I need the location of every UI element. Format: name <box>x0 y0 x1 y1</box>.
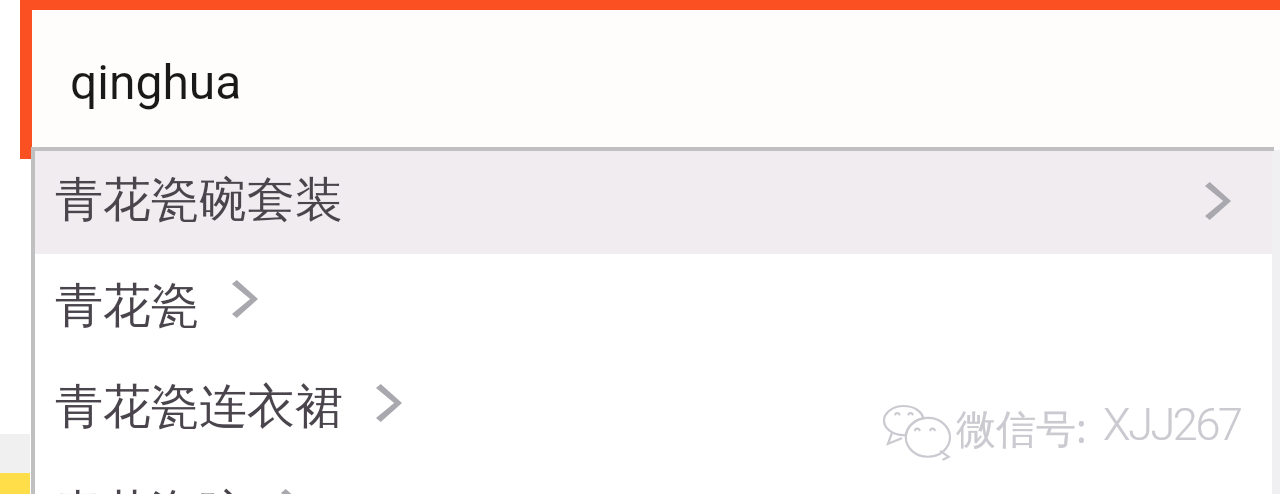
staticText: 青花瓷 <box>55 276 199 336</box>
staticText: 微信号: <box>956 400 1087 455</box>
button[interactable] <box>35 355 1272 456</box>
button[interactable] <box>35 456 1272 494</box>
staticText: 青花瓷碗 <box>55 483 247 494</box>
button[interactable] <box>35 254 1272 355</box>
staticText: 青花瓷碗套装 <box>55 170 343 230</box>
staticText: qinghua <box>70 54 242 110</box>
staticText: XJJ267 <box>1103 398 1241 451</box>
staticText: 青花瓷连衣裙 <box>55 377 343 437</box>
button[interactable] <box>35 151 1272 254</box>
button[interactable]: qinghua <box>32 10 1280 147</box>
other: WeChat <box>884 406 950 460</box>
